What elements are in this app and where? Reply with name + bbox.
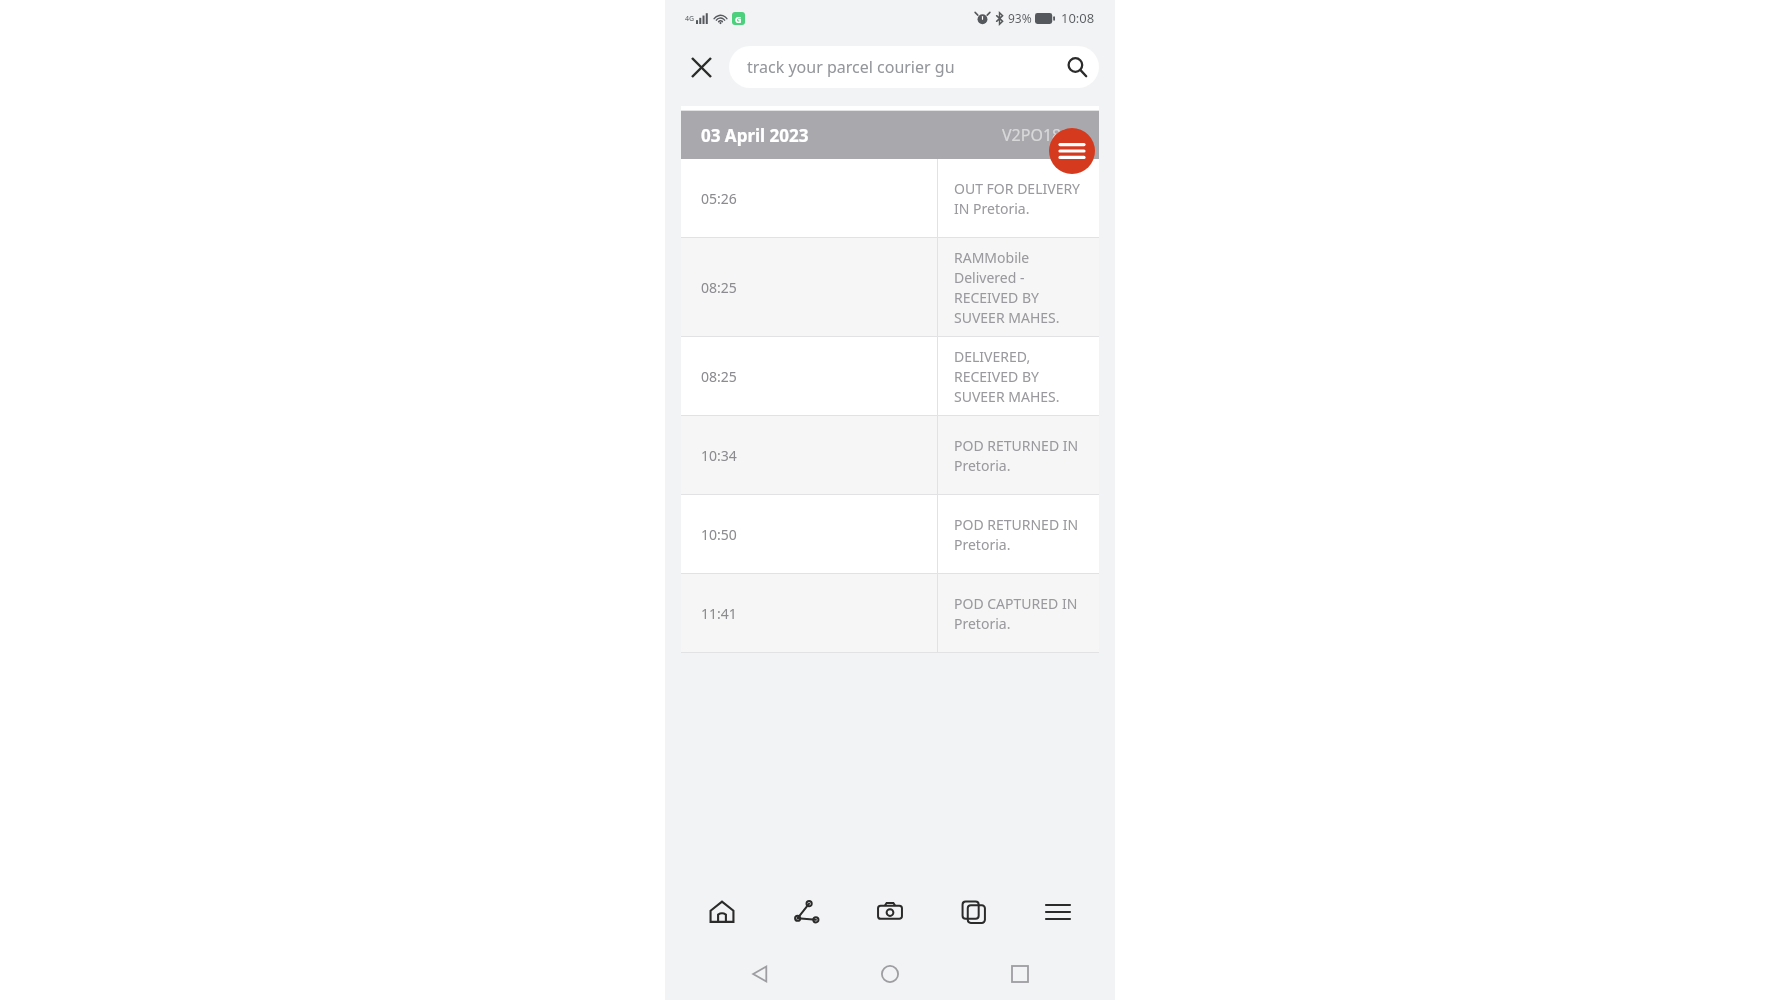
staticText: 03 April 2023 (701, 124, 809, 147)
button[interactable]: 10:34 (681, 416, 1099, 494)
button[interactable]: Recents (985, 950, 1055, 998)
staticText: 08:25 (701, 367, 737, 386)
button[interactable]: Tabs (947, 885, 1001, 939)
staticText: 4G (685, 14, 695, 24)
staticText: POD RETURNED IN Pretoria. (954, 436, 1091, 475)
button[interactable]: 08:25 (681, 337, 1099, 415)
staticText: 11:41 (701, 604, 737, 623)
button[interactable]: track your parcel courier gu (729, 46, 1099, 88)
staticText: RAMMobile Delivered - RECEIVED BY SUVEER… (954, 248, 1091, 327)
staticText: 10:34 (701, 446, 737, 465)
button[interactable]: 10:50 (681, 495, 1099, 573)
button[interactable]: Share (779, 885, 833, 939)
button[interactable]: Close (679, 45, 723, 89)
staticText: track your parcel courier gu (747, 56, 1055, 78)
button[interactable]: Search (1055, 46, 1099, 88)
staticText: DELIVERED, RECEIVED BY SUVEER MAHES. (954, 347, 1091, 406)
button[interactable]: Home (855, 950, 925, 998)
button[interactable]: 11:41 (681, 574, 1099, 652)
button[interactable]: Camera (863, 885, 917, 939)
staticText: 10:50 (701, 525, 737, 544)
button[interactable]: Menu (1031, 885, 1085, 939)
staticText: 05:26 (701, 189, 737, 208)
button[interactable]: 08:25 (681, 238, 1099, 336)
button[interactable]: Menu (1049, 128, 1095, 174)
staticText: G (735, 13, 742, 25)
button[interactable]: Back (725, 950, 795, 998)
staticText: POD RETURNED IN Pretoria. (954, 515, 1091, 554)
button[interactable]: Home (695, 885, 749, 939)
staticText: 10:08 (1061, 9, 1095, 27)
staticText: POD CAPTURED IN Pretoria. (954, 594, 1091, 633)
staticText: 93% (1008, 10, 1032, 26)
staticText: V2PO189 (1002, 124, 1071, 146)
staticText: OUT FOR DELIVERY IN Pretoria. (954, 179, 1091, 218)
staticText: 08:25 (701, 278, 737, 297)
button[interactable]: 05:26 (681, 159, 1099, 237)
